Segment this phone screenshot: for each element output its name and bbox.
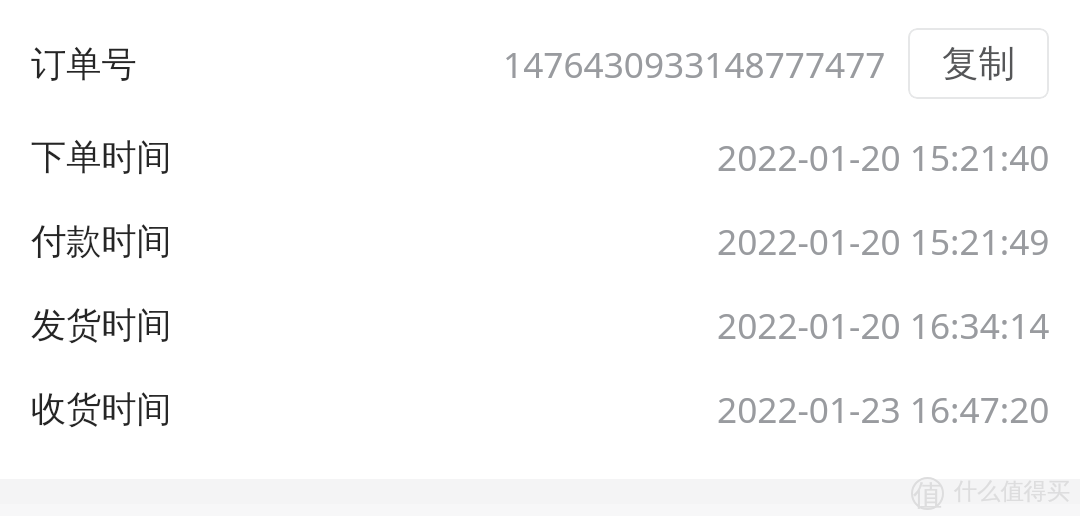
staticText: 发货时间	[31, 303, 172, 347]
staticText: 值	[913, 477, 942, 510]
staticText: 复制	[942, 41, 1015, 87]
staticText: 1476430933148777477	[503, 40, 886, 88]
staticText: 什么值得买	[954, 477, 1070, 506]
staticText: 2022-01-23 16:47:20	[717, 385, 1050, 433]
staticText: 付款时间	[31, 219, 172, 263]
staticText: 下单时间	[31, 135, 172, 179]
button[interactable]: 复制	[908, 28, 1049, 99]
staticText: 2022-01-20 15:21:40	[717, 133, 1050, 181]
staticText: 收货时间	[31, 387, 172, 431]
staticText: 2022-01-20 15:21:49	[717, 217, 1050, 265]
staticText: 2022-01-20 16:34:14	[717, 301, 1050, 349]
staticText: 订单号	[31, 42, 137, 86]
